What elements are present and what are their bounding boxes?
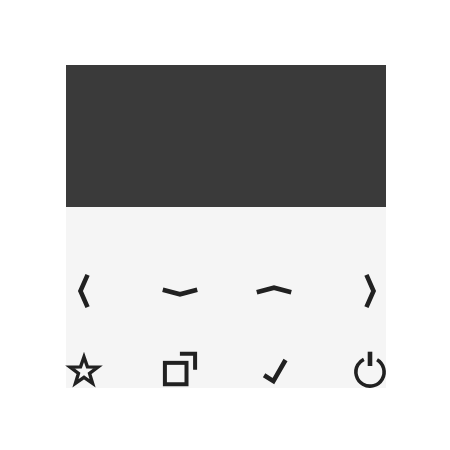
button[interactable]: Previous: [60, 267, 108, 315]
button[interactable]: Volume down: [156, 268, 204, 316]
button[interactable]: Power: [346, 348, 394, 396]
button[interactable]: Confirm: [251, 347, 299, 395]
button[interactable]: Favourite: [60, 347, 108, 395]
button[interactable]: Next: [346, 267, 394, 315]
button[interactable]: Duplicate: [156, 345, 204, 393]
button[interactable]: Volume up: [250, 266, 298, 314]
